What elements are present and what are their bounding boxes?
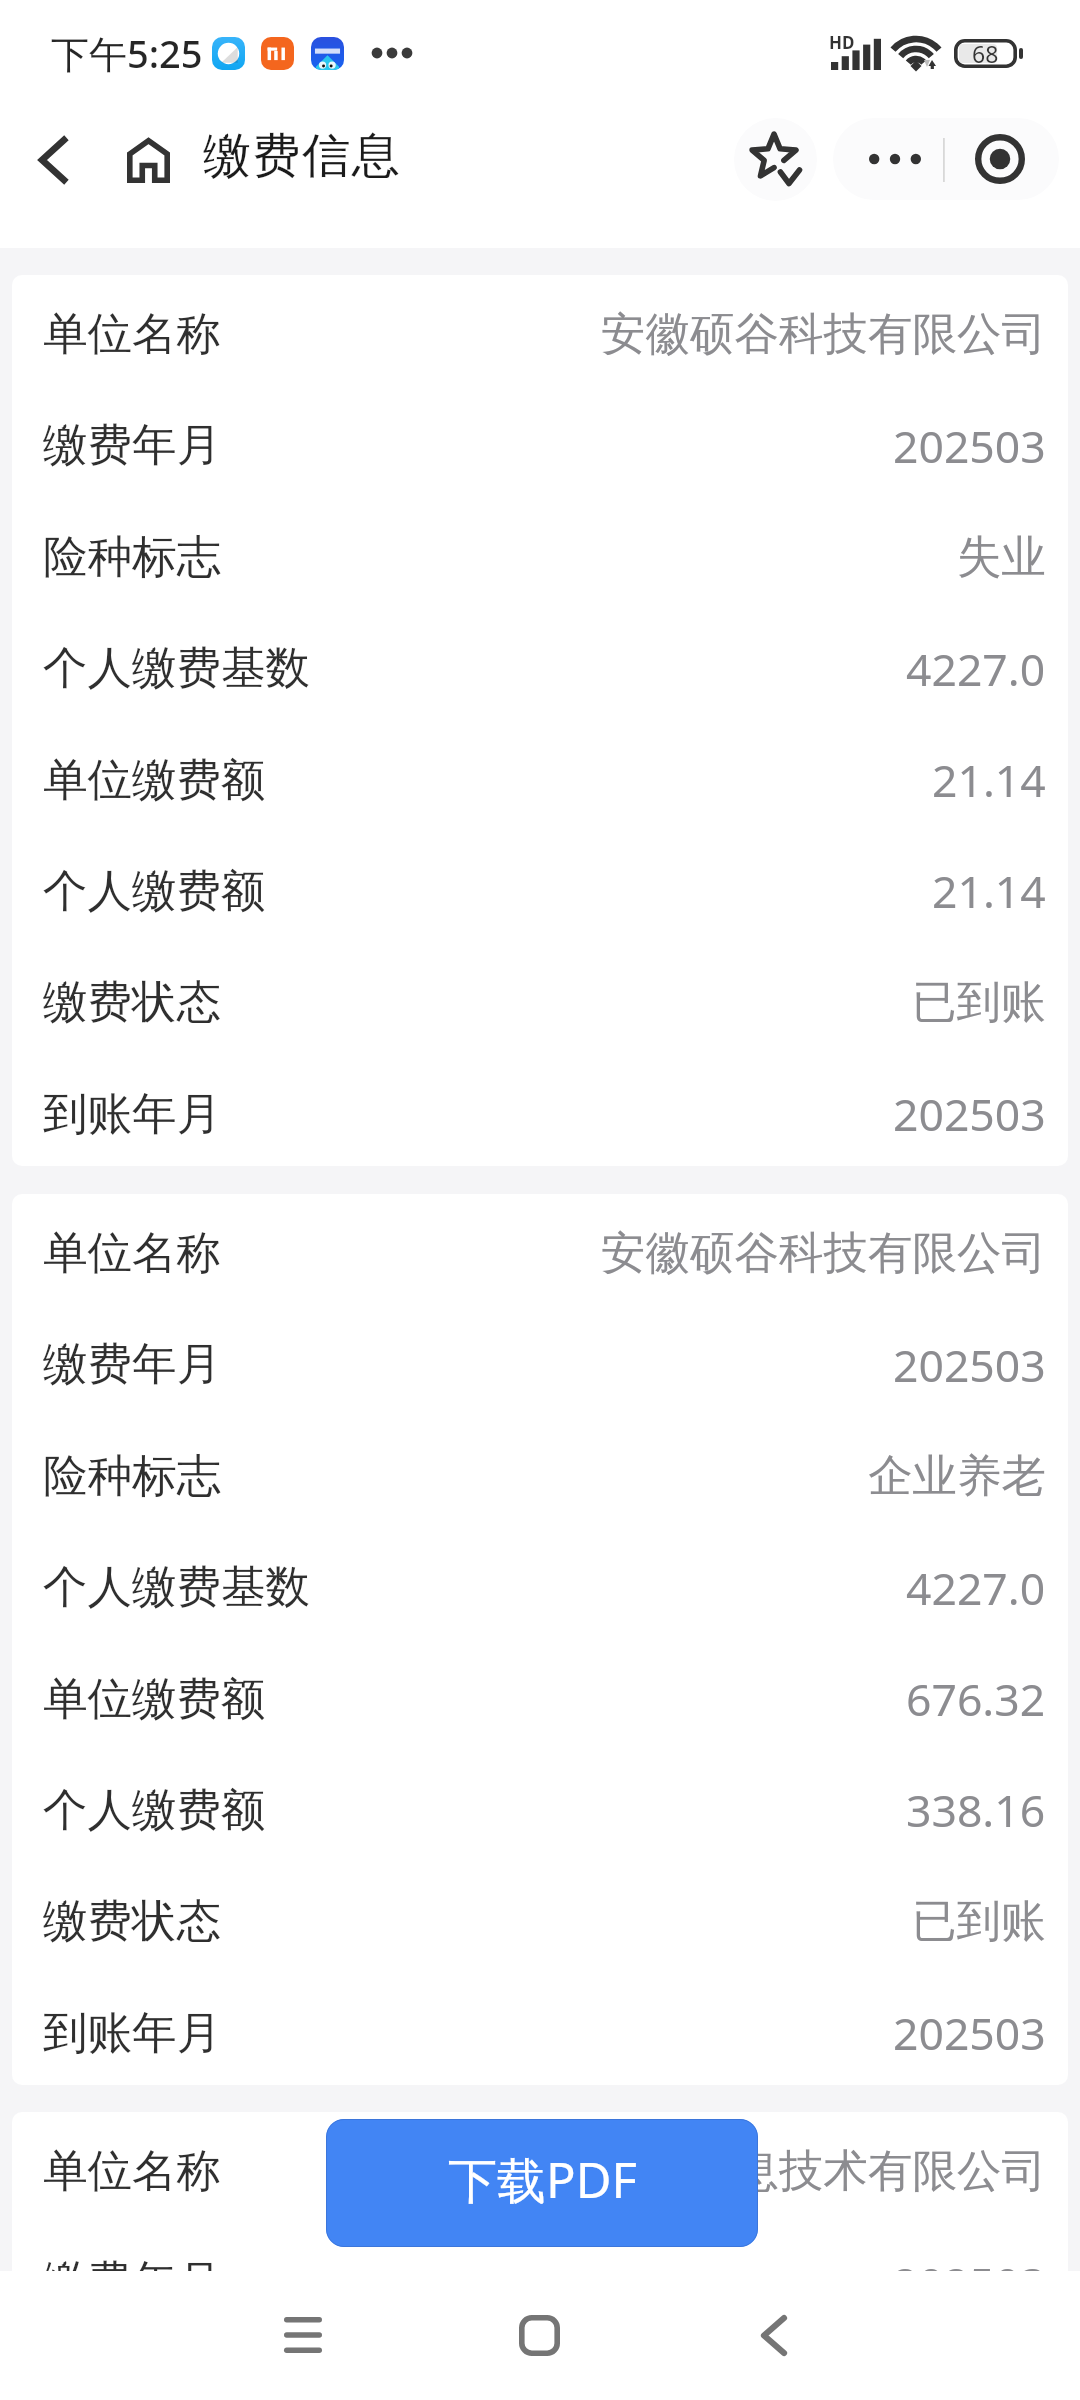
button[interactable]: 缴费年月	[12, 386, 1068, 498]
button[interactable]: More options	[833, 118, 944, 200]
staticText: 已到账	[912, 1893, 1046, 1949]
staticText: 险种标志	[43, 1448, 221, 1504]
staticText: 单位缴费额	[43, 752, 266, 808]
staticText: 68	[972, 38, 999, 67]
staticText: 个人缴费基数	[43, 640, 310, 696]
button[interactable]: 到账年月	[12, 1974, 1068, 2085]
staticText: 676.32	[906, 1668, 1046, 1729]
button[interactable]: Favorite	[734, 118, 817, 201]
staticText: 202503	[893, 1083, 1046, 1144]
staticText: 个人缴费额	[43, 863, 266, 919]
button[interactable]: Home	[479, 2277, 599, 2393]
staticText: 已到账	[912, 974, 1046, 1030]
button[interactable]: Close app	[948, 118, 1059, 200]
button[interactable]: 个人缴费额	[12, 1751, 1068, 1862]
staticText: 下载PDF	[448, 2146, 637, 2213]
button[interactable]: 缴费年月	[12, 1305, 1068, 1417]
button[interactable]: 单位缴费额	[12, 1640, 1068, 1751]
staticText: 21.14	[932, 749, 1046, 810]
staticText: 个人缴费额	[43, 1782, 266, 1838]
button[interactable]: 到账年月	[12, 1055, 1068, 1166]
staticText: 下午5:25	[51, 27, 203, 79]
button[interactable]: 单位缴费额	[12, 721, 1068, 832]
button[interactable]: 险种标志	[12, 1417, 1068, 1528]
button[interactable]: 缴费状态	[12, 943, 1068, 1055]
button[interactable]: Back	[714, 2277, 834, 2393]
button[interactable]: 单位名称	[12, 1194, 1068, 1305]
staticText: 到账年月	[43, 1086, 221, 1142]
staticText: 缴费年月	[43, 417, 221, 473]
staticText: 4227.0	[906, 638, 1046, 699]
button[interactable]: Back	[14, 116, 90, 204]
staticText: 缴费状态	[43, 1893, 221, 1949]
button[interactable]: 缴费年月	[12, 2223, 1068, 2335]
button[interactable]: 单位名称	[12, 275, 1068, 386]
staticText: 202503	[893, 2002, 1046, 2063]
staticText: 缴费年月	[43, 1336, 221, 1392]
staticText: 安徽硕谷科技有限公司	[601, 1225, 1046, 1281]
staticText: 个人缴费基数	[43, 1559, 310, 1615]
staticText: 险种标志	[43, 529, 221, 585]
button[interactable]: Home	[106, 116, 190, 204]
button[interactable]: 单位名称	[12, 2112, 1068, 2223]
staticText: 缴费信息	[203, 126, 402, 186]
button[interactable]: 下载PDF	[326, 2119, 758, 2247]
staticText: 安徽硕谷科技有限公司	[601, 306, 1046, 362]
staticText: 4227.0	[906, 1557, 1046, 1618]
staticText: 到账年月	[43, 2005, 221, 2061]
staticText: 338.16	[906, 1779, 1046, 1840]
staticText: 202503	[893, 1334, 1046, 1395]
staticText: 单位名称	[43, 1225, 221, 1281]
button[interactable]: 个人缴费基数	[12, 1528, 1068, 1640]
staticText: 安徽硕谷信息技术有限公司	[512, 2143, 1046, 2199]
staticText: 202503	[893, 415, 1046, 476]
button[interactable]: 险种标志	[12, 498, 1068, 609]
staticText: 失业	[957, 529, 1046, 585]
staticText: 21.14	[932, 860, 1046, 921]
staticText: 单位名称	[43, 2143, 221, 2199]
staticText: HD	[829, 31, 855, 54]
staticText: 企业养老	[868, 1448, 1046, 1504]
staticText: 202503	[893, 2252, 1046, 2313]
button[interactable]: 个人缴费基数	[12, 609, 1068, 721]
button[interactable]: 缴费状态	[12, 1862, 1068, 1974]
staticText: 缴费年月	[43, 2254, 221, 2310]
staticText: 单位名称	[43, 306, 221, 362]
staticText: 单位缴费额	[43, 1671, 266, 1727]
staticText: 缴费状态	[43, 974, 221, 1030]
button[interactable]: 个人缴费额	[12, 832, 1068, 943]
button[interactable]: Recent apps	[243, 2277, 363, 2393]
